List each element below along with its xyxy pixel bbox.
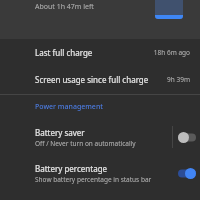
staticText: Power management: [35, 102, 103, 112]
button[interactable]: Battery saver: [0, 119, 200, 155]
staticText: Screen usage since full charge: [35, 74, 167, 85]
staticText: About 1h 47m left: [35, 2, 94, 12]
other: Battery level: [155, 0, 183, 19]
staticText: Last full charge: [35, 47, 153, 58]
staticText: Off / Never turn on automatically: [35, 139, 136, 148]
button[interactable]: Last full charge: [0, 39, 200, 66]
staticText: 9h 39m: [167, 75, 190, 84]
staticText: Battery saver: [35, 127, 85, 138]
button[interactable]: Battery percentage on: [173, 155, 200, 191]
staticText: Show battery percentage in status bar: [35, 175, 152, 184]
button[interactable]: Battery saver off: [173, 119, 200, 155]
staticText: 18h 6m ago: [153, 48, 190, 57]
staticText: Battery percentage: [35, 163, 108, 174]
button[interactable]: Screen usage since full charge: [0, 66, 200, 93]
button[interactable]: Battery percentage: [0, 155, 200, 191]
